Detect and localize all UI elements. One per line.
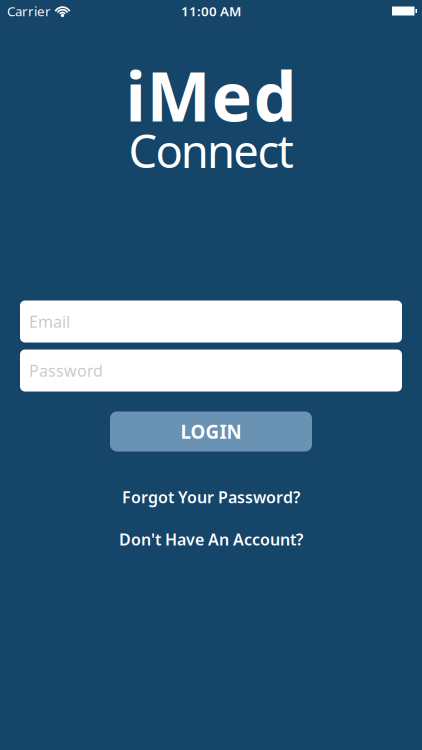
button[interactable]: Don't Have An Account? bbox=[119, 529, 303, 550]
staticText: Connect bbox=[128, 120, 294, 180]
staticText: Password bbox=[29, 360, 103, 381]
staticText: 11:00 AM bbox=[181, 2, 241, 20]
staticText: LOGIN bbox=[180, 419, 241, 444]
button[interactable]: LOGIN bbox=[110, 411, 312, 451]
staticText: Forgot Your Password? bbox=[122, 486, 300, 508]
staticText: Email bbox=[29, 311, 70, 332]
staticText: iMed bbox=[125, 50, 296, 140]
button[interactable]: Password bbox=[20, 349, 402, 391]
button[interactable]: Forgot Your Password? bbox=[122, 486, 300, 508]
button[interactable]: Email bbox=[20, 300, 402, 342]
staticText: Don't Have An Account? bbox=[119, 529, 303, 550]
staticText: Carrier bbox=[7, 2, 51, 20]
